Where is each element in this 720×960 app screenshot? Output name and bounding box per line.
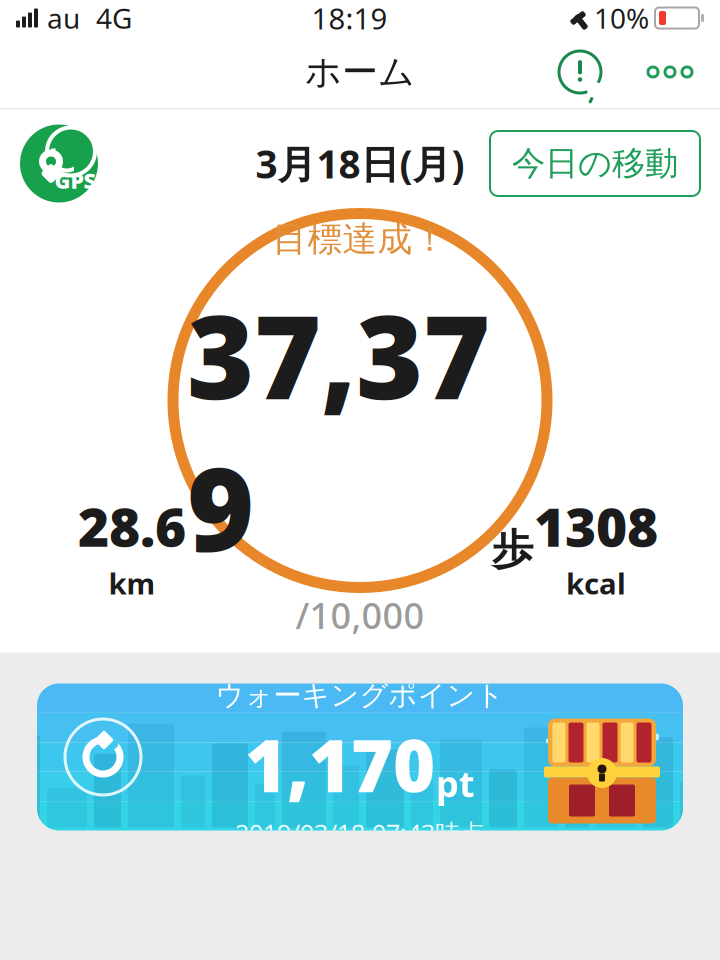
staticText: 1,170 [245,717,435,812]
button[interactable]: 今日の移動 [490,131,700,196]
button[interactable]: GPS [20,124,98,202]
button[interactable]: ウォーキングポイント [37,683,683,830]
staticText: GPS [54,166,95,195]
staticText: 今日の移動 [512,143,678,184]
staticText: km [108,563,155,602]
staticText: 3月18日(月) [255,138,464,189]
staticText: 2019/03/18 07:43時点 [235,816,485,850]
staticText: 18:19 [311,0,387,37]
staticText: 37,379 [187,279,490,583]
staticText: /10,000 [295,591,424,639]
staticText: pt [436,759,475,807]
staticText: 10% [594,0,649,37]
staticText: 1308 [534,491,658,561]
staticText: 目標達成！ [272,218,447,261]
button[interactable]: お知らせ [554,46,606,98]
staticText: ウォーキングポイント [215,678,504,713]
staticText: kcal [566,563,626,602]
staticText: 28.6 [78,491,186,561]
staticText: ホーム [305,50,415,94]
button[interactable]: メニュー [644,46,696,98]
staticText: au [47,0,80,37]
staticText: 歩 [492,524,533,575]
staticText: 4G [96,0,132,37]
